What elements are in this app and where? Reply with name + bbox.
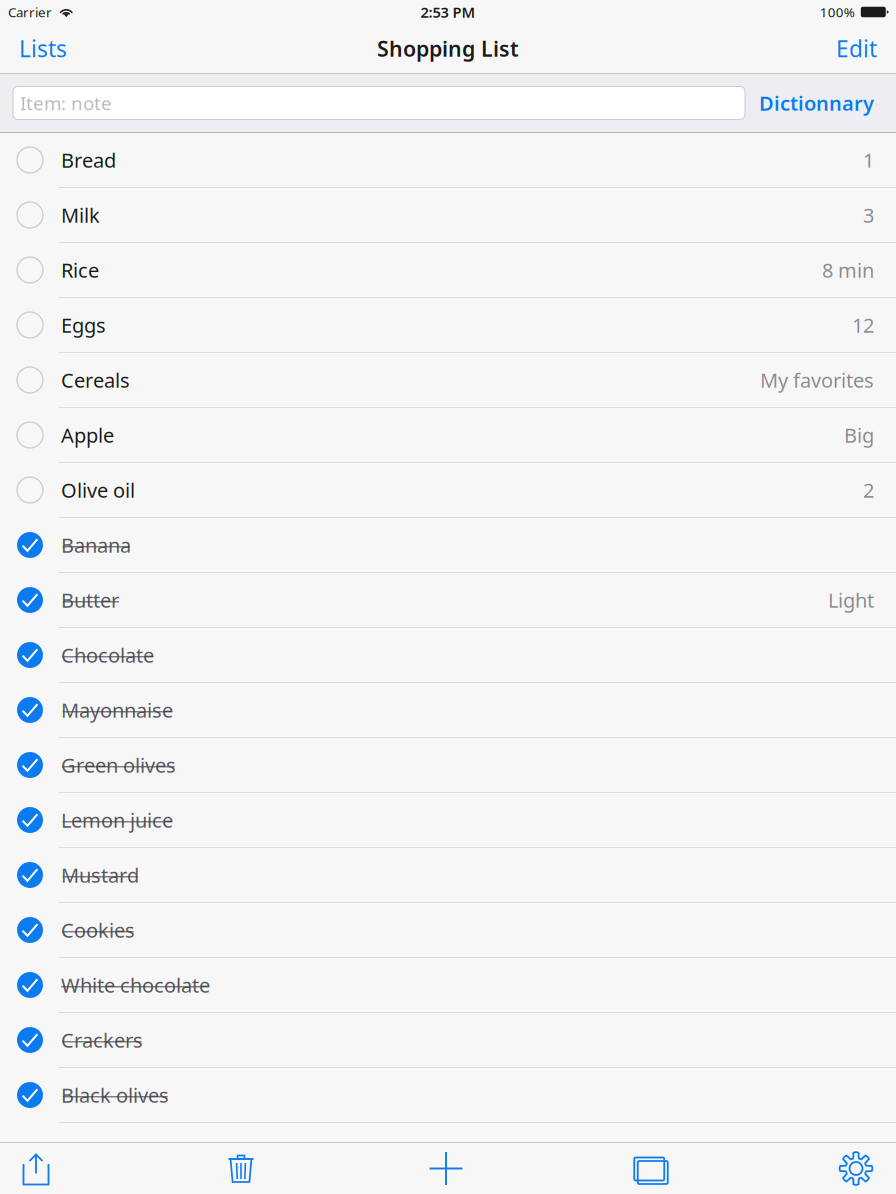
staticText: 2:53 PM [420, 2, 475, 22]
staticText: 1 [863, 147, 874, 173]
button[interactable]: Butter [0, 573, 896, 628]
staticText: 8 min [822, 257, 874, 283]
button[interactable]: Eggs [0, 298, 896, 353]
staticText: Green olives [61, 752, 176, 778]
staticText: Light [828, 587, 874, 613]
button[interactable]: Green olives [0, 738, 896, 793]
button[interactable]: Delete [205, 1143, 277, 1194]
button[interactable]: Mayonnaise [0, 683, 896, 738]
button[interactable]: Black olives [0, 1068, 896, 1123]
staticText: Chocolate [61, 642, 154, 668]
staticText: Lemon juice [61, 807, 173, 833]
staticText: Milk [61, 202, 100, 228]
staticText: 100% [820, 3, 855, 21]
staticText: Crackers [61, 1027, 143, 1053]
staticText: Rice [61, 257, 99, 283]
staticText: Black olives [61, 1082, 169, 1108]
button[interactable]: Apple [0, 408, 896, 463]
button[interactable]: Share [0, 1143, 72, 1194]
button[interactable]: Milk [0, 188, 896, 243]
staticText: My favorites [760, 367, 874, 393]
staticText: Cereals [61, 367, 130, 393]
button[interactable]: Settings [820, 1143, 892, 1194]
staticText: Apple [61, 422, 114, 448]
staticText: Butter [61, 587, 119, 613]
staticText: 3 [863, 202, 874, 228]
staticText: Mustard [61, 862, 139, 888]
button[interactable]: Rice [0, 243, 896, 298]
staticText: Edit [836, 33, 877, 63]
button[interactable]: Cookies [0, 903, 896, 958]
staticText: Banana [61, 532, 131, 558]
button[interactable]: Crackers [0, 1013, 896, 1068]
staticText: Cookies [61, 917, 135, 943]
staticText: Mayonnaise [61, 697, 173, 723]
button[interactable]: White chocolate [0, 958, 896, 1013]
button[interactable]: Chocolate [0, 628, 896, 683]
button[interactable]: Edit [822, 24, 896, 73]
button[interactable]: Lists [0, 24, 81, 73]
staticText: White chocolate [61, 972, 210, 998]
staticText: 12 [852, 312, 874, 338]
button[interactable]: Add item [410, 1143, 482, 1194]
button[interactable]: Bread [0, 133, 896, 188]
button[interactable]: Duplicate [615, 1143, 687, 1194]
staticText: Lists [19, 33, 67, 63]
staticText: Carrier [8, 3, 52, 21]
button[interactable]: Dictionnary [759, 74, 874, 132]
button[interactable]: Lemon juice [0, 793, 896, 848]
staticText: Olive oil [61, 477, 135, 503]
staticText: Shopping List [377, 34, 519, 63]
staticText: Bread [61, 147, 116, 173]
staticText: 2 [863, 477, 874, 503]
staticText: Eggs [61, 312, 106, 338]
staticText: Big [844, 422, 874, 448]
button[interactable]: Cereals [0, 353, 896, 408]
staticText: Item: note [20, 91, 112, 115]
button[interactable]: Banana [0, 518, 896, 573]
button[interactable]: Olive oil [0, 463, 896, 518]
button[interactable]: Mustard [0, 848, 896, 903]
staticText: Dictionnary [759, 90, 874, 116]
